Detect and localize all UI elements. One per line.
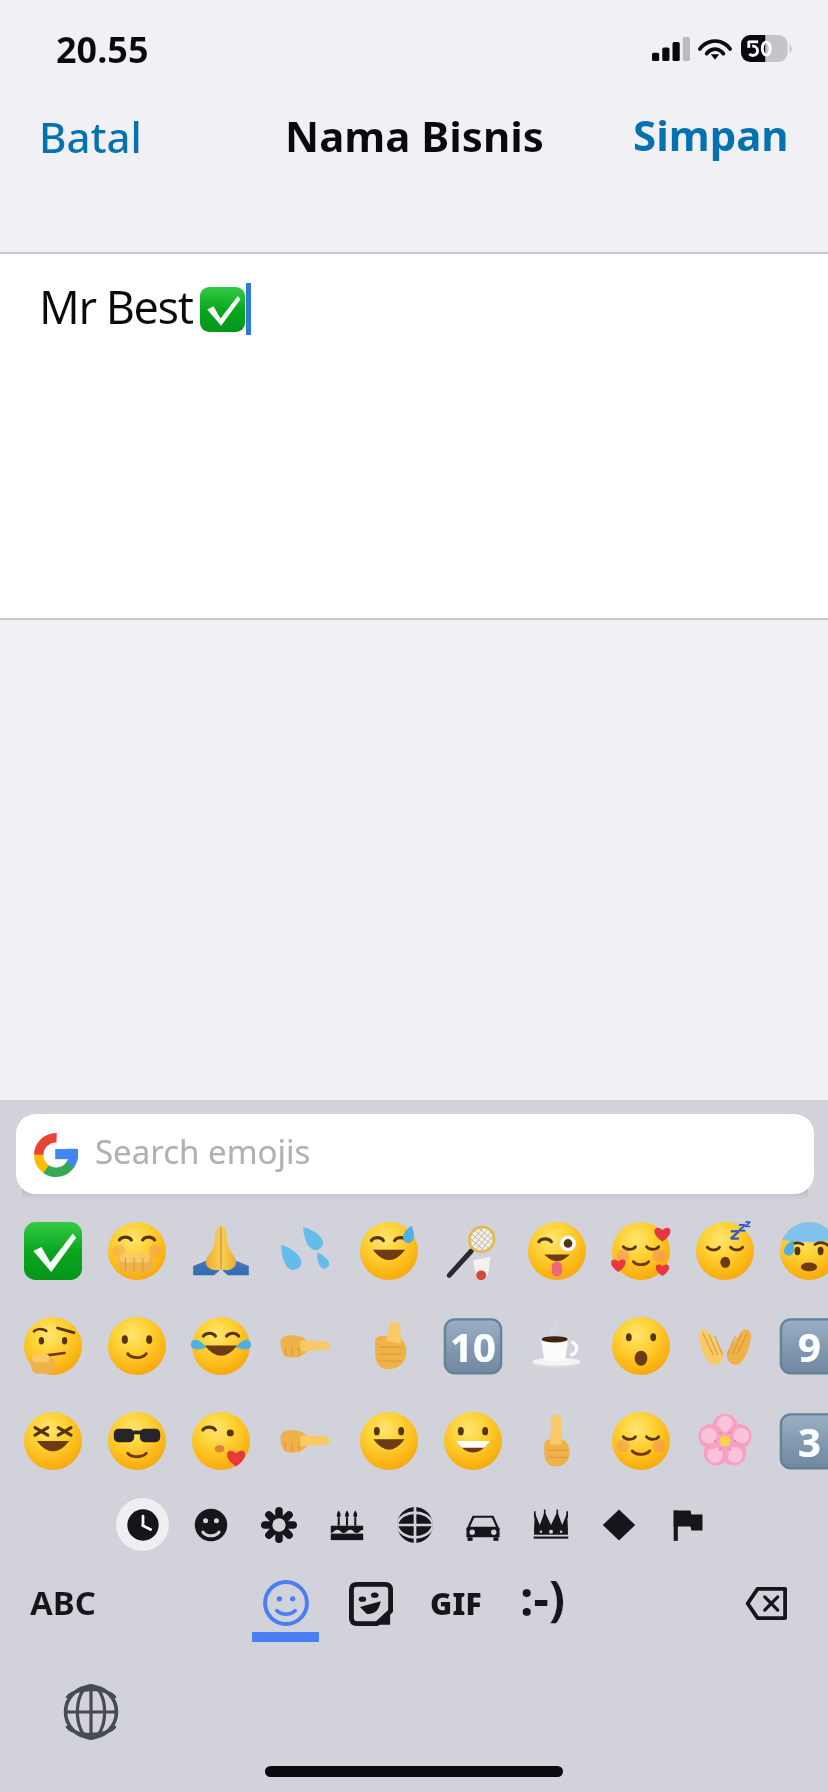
staticText: Batal bbox=[39, 108, 142, 165]
button[interactable]: grin_sweat bbox=[360, 1222, 418, 1280]
button[interactable]: check bbox=[24, 1222, 82, 1280]
button[interactable]: sleeping bbox=[696, 1222, 754, 1280]
button[interactable]: grin_teeth bbox=[444, 1412, 502, 1470]
button[interactable]: sunglasses bbox=[108, 1412, 166, 1470]
button[interactable]: point_up bbox=[528, 1412, 586, 1470]
button[interactable]: slight_smile bbox=[108, 1317, 166, 1375]
staticText: 3 bbox=[798, 1414, 821, 1468]
button[interactable]: sweat_drops bbox=[276, 1222, 334, 1280]
button[interactable]: joy bbox=[192, 1317, 250, 1375]
staticText: ABC bbox=[30, 1580, 96, 1625]
button[interactable]: wink_tongue bbox=[528, 1222, 586, 1280]
staticText: :-) bbox=[520, 1565, 566, 1630]
button[interactable]: squint_grin bbox=[24, 1412, 82, 1470]
button[interactable]: anxious bbox=[780, 1222, 828, 1280]
button[interactable]: three bbox=[780, 1412, 828, 1470]
button[interactable]: open_hands bbox=[696, 1317, 754, 1375]
button[interactable]: Stickers bbox=[349, 1582, 393, 1626]
button[interactable]: Search emojis bbox=[16, 1114, 814, 1194]
button[interactable]: Emoji bbox=[263, 1580, 309, 1626]
button[interactable]: smile_relax bbox=[612, 1412, 670, 1470]
button[interactable]: clock bbox=[116, 1498, 169, 1551]
button[interactable]: hushed bbox=[612, 1317, 670, 1375]
button[interactable]: Backspace bbox=[737, 1578, 795, 1628]
button[interactable]: thinking bbox=[24, 1317, 82, 1375]
button[interactable]: thumbsup bbox=[360, 1317, 418, 1375]
staticText: Nama Bisnis bbox=[285, 107, 544, 164]
button[interactable]: Emoticons bbox=[504, 1555, 582, 1640]
button[interactable]: ten bbox=[444, 1317, 502, 1375]
button[interactable]: ABC bbox=[8, 1562, 118, 1643]
button[interactable]: point_right bbox=[276, 1412, 334, 1470]
button[interactable]: car bbox=[456, 1498, 509, 1551]
staticText: Simpan bbox=[633, 106, 789, 163]
button[interactable]: cake bbox=[320, 1498, 373, 1551]
button[interactable]: hand_over_mouth bbox=[108, 1222, 166, 1280]
button[interactable]: Batal bbox=[9, 94, 172, 179]
button[interactable]: smiley bbox=[184, 1498, 237, 1551]
staticText: 20.55 bbox=[56, 25, 149, 74]
button[interactable]: ball bbox=[388, 1498, 441, 1551]
button[interactable]: point_right_small bbox=[276, 1317, 334, 1375]
button[interactable]: diamond bbox=[592, 1498, 645, 1551]
button[interactable]: GIF keyboard bbox=[414, 1570, 498, 1637]
staticText: GIF bbox=[430, 1583, 482, 1624]
button[interactable]: pray bbox=[192, 1222, 250, 1280]
staticText: 10 bbox=[450, 1319, 496, 1373]
button[interactable]: flag bbox=[660, 1498, 713, 1551]
button[interactable]: smiling_hearts bbox=[612, 1222, 670, 1280]
staticText: Mr Best bbox=[39, 276, 193, 337]
button[interactable]: coffee bbox=[528, 1317, 586, 1375]
button[interactable]: blossom bbox=[696, 1412, 754, 1470]
staticText: 9 bbox=[798, 1319, 821, 1373]
button[interactable]: Simpan bbox=[603, 92, 819, 177]
staticText: Search emojis bbox=[95, 1129, 311, 1174]
button[interactable]: grin_big bbox=[360, 1412, 418, 1470]
button[interactable]: Change keyboard language bbox=[62, 1683, 120, 1741]
button[interactable]: crown bbox=[524, 1498, 577, 1551]
button[interactable]: flower bbox=[252, 1498, 305, 1551]
button[interactable]: kiss_heart bbox=[192, 1412, 250, 1470]
button[interactable]: badminton bbox=[444, 1222, 502, 1280]
button[interactable]: nine bbox=[780, 1317, 828, 1375]
